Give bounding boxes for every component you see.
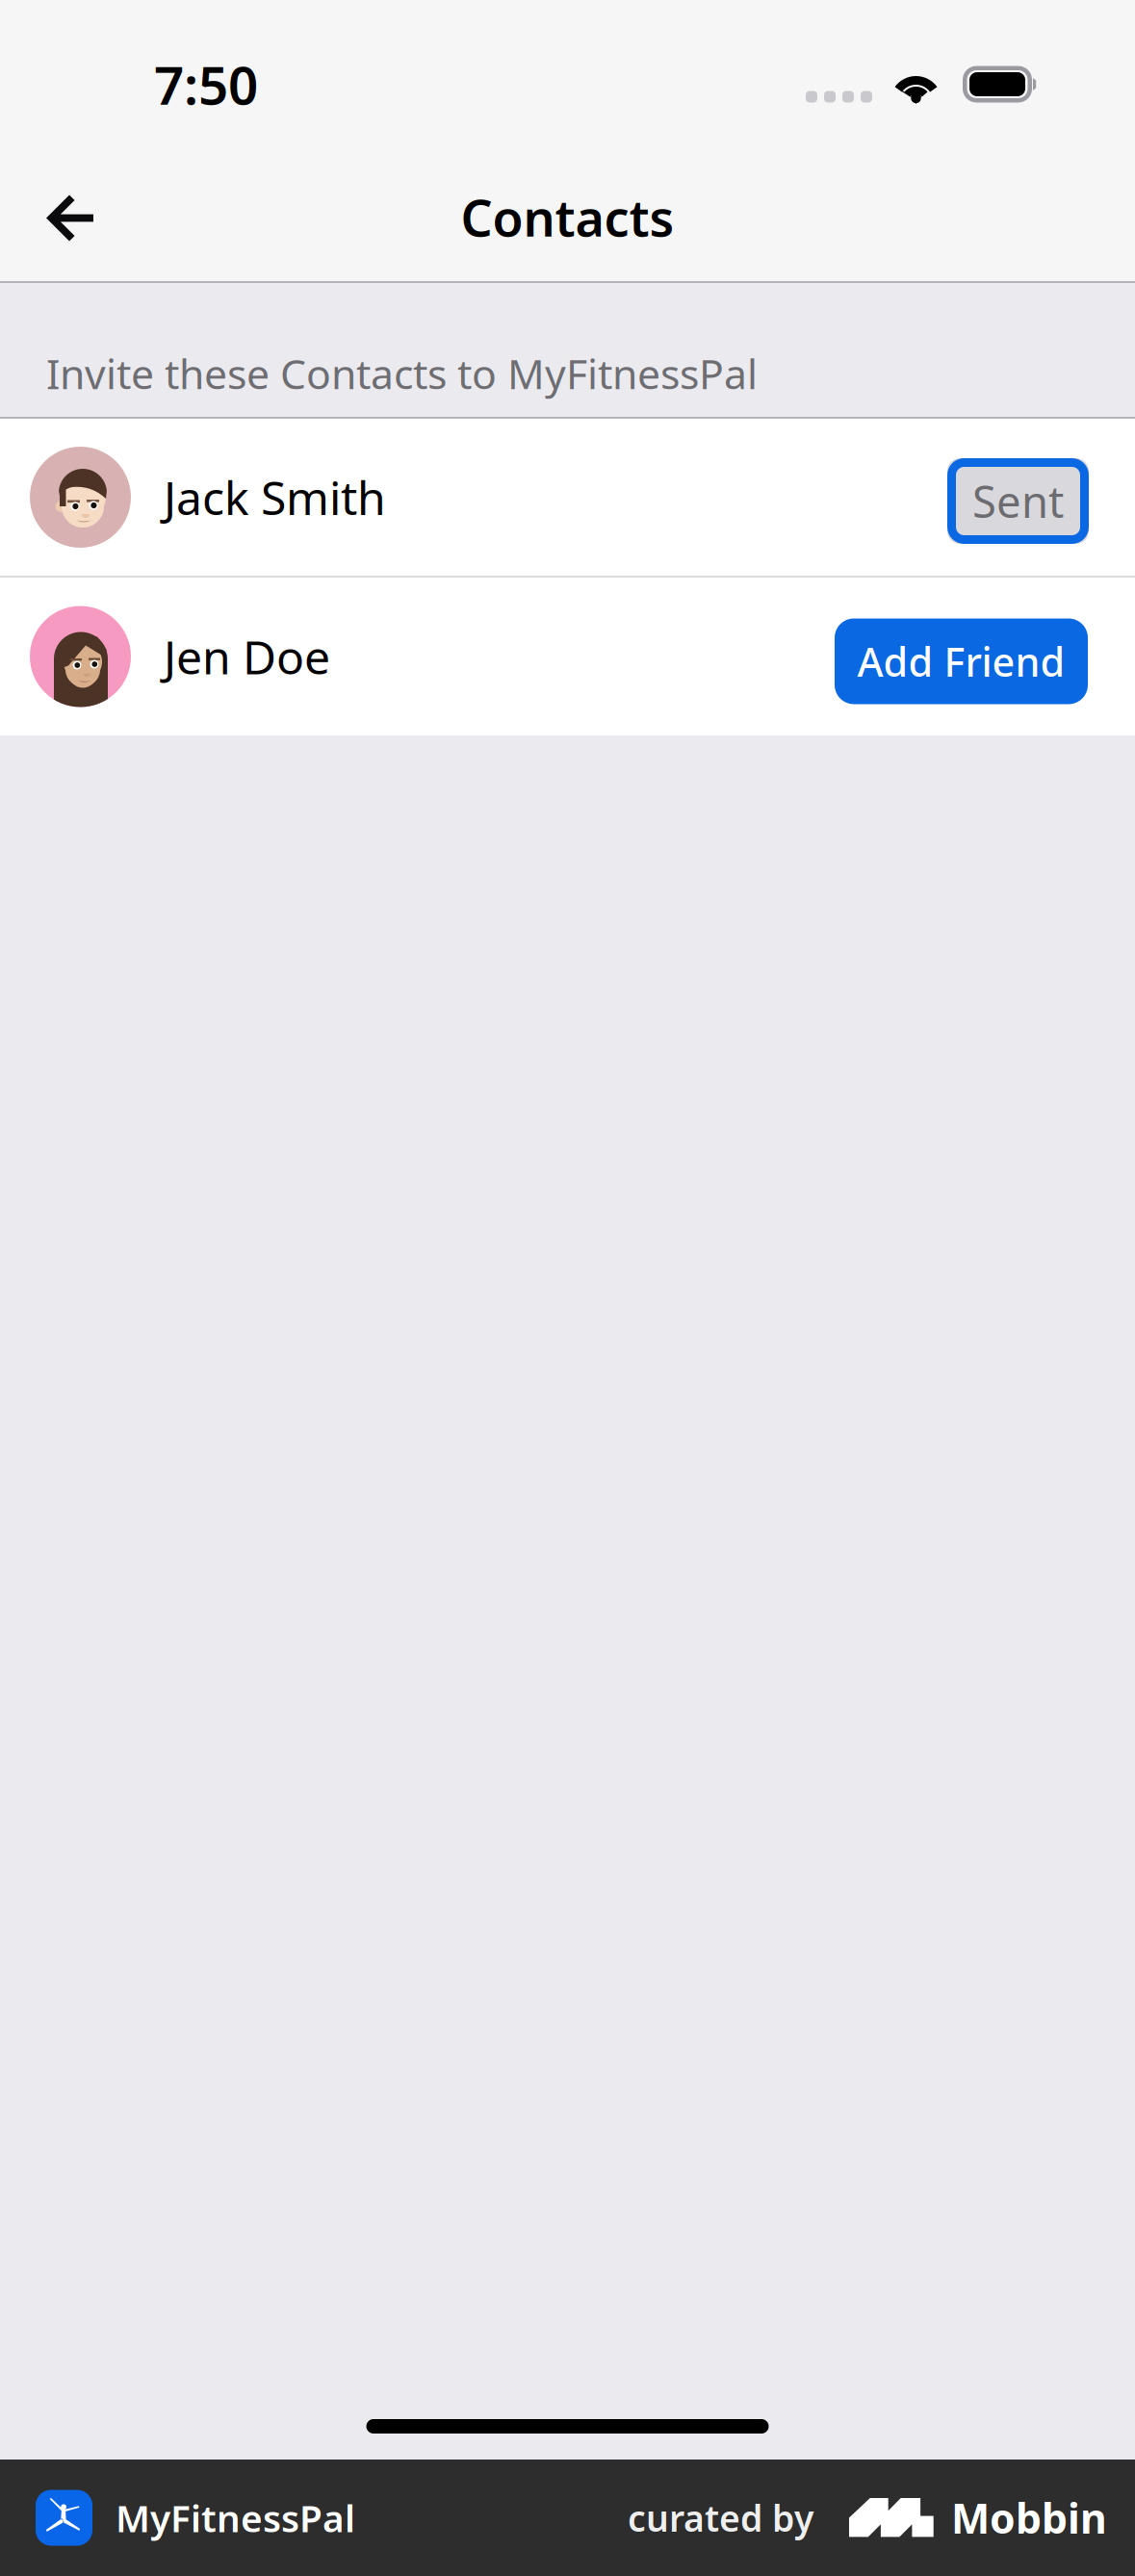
staticText: Mobbin <box>951 2491 1107 2545</box>
staticText: 7:50 <box>154 49 258 119</box>
button[interactable]: Add Friend <box>835 618 1088 704</box>
staticText: Add Friend <box>857 635 1065 688</box>
staticText: Invite these Contacts to MyFitnessPal <box>46 346 758 400</box>
staticText: MyFitnessPal <box>116 2493 355 2542</box>
button[interactable]: Sent <box>947 458 1089 544</box>
staticText: Jen Doe <box>164 626 330 687</box>
button[interactable]: Jen Doe <box>0 578 1135 735</box>
staticText: Contacts <box>461 184 674 250</box>
staticText: Jack Smith <box>164 466 386 528</box>
staticText: Sent <box>972 472 1064 530</box>
button[interactable]: Jack Smith <box>0 419 1135 576</box>
staticText: curated by <box>628 2494 813 2542</box>
button[interactable]: Back <box>0 142 135 278</box>
